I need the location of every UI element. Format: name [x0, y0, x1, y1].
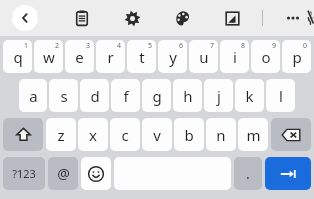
staticText: z: [57, 125, 65, 145]
staticText: i: [233, 47, 237, 67]
button[interactable]: d: [80, 79, 109, 112]
button[interactable]: Shift: [3, 118, 43, 151]
staticText: q: [13, 47, 23, 67]
button[interactable]: h: [173, 79, 202, 112]
button[interactable]: r: [96, 40, 125, 73]
staticText: o: [261, 47, 271, 67]
button[interactable]: y: [158, 40, 187, 73]
staticText: t: [139, 47, 145, 67]
staticText: d: [90, 86, 100, 106]
staticText: s: [60, 86, 68, 106]
staticText: 7: [210, 41, 215, 51]
staticText: m: [246, 125, 261, 145]
button[interactable]: l: [266, 79, 295, 112]
button[interactable]: .: [234, 157, 262, 190]
staticText: a: [29, 86, 38, 106]
staticText: j: [217, 86, 221, 106]
button[interactable]: c: [110, 118, 140, 151]
button[interactable]: Settings: [118, 4, 146, 32]
button[interactable]: More options: [279, 4, 307, 32]
button[interactable]: f: [111, 79, 140, 112]
button[interactable]: i: [220, 40, 249, 73]
button[interactable]: v: [142, 118, 172, 151]
button[interactable]: Backspace: [271, 118, 311, 151]
staticText: h: [183, 86, 193, 106]
staticText: c: [121, 125, 129, 145]
staticText: u: [199, 47, 209, 67]
button[interactable]: Voice input disabled: [307, 4, 314, 32]
staticText: 2: [55, 41, 60, 51]
staticText: .: [246, 164, 250, 183]
staticText: n: [216, 125, 226, 145]
button[interactable]: u: [189, 40, 218, 73]
staticText: k: [245, 86, 254, 106]
staticText: 1: [24, 41, 29, 51]
staticText: 9: [272, 41, 277, 51]
staticText: 8: [241, 41, 246, 51]
button[interactable]: a: [19, 79, 47, 112]
button[interactable]: m: [238, 118, 268, 151]
button[interactable]: x: [78, 118, 108, 151]
staticText: b: [184, 125, 194, 145]
staticText: 6: [179, 41, 184, 51]
button[interactable]: Clipboard: [68, 4, 96, 32]
staticText: e: [75, 47, 84, 67]
button[interactable]: Next: [265, 157, 311, 190]
button[interactable]: j: [204, 79, 233, 112]
button[interactable]: Emoji: [81, 157, 111, 190]
button[interactable]: g: [142, 79, 171, 112]
staticText: x: [89, 125, 97, 145]
staticText: l: [279, 86, 283, 106]
staticText: r: [107, 47, 114, 67]
button[interactable]: n: [206, 118, 236, 151]
button[interactable]: Resize keyboard: [218, 4, 246, 32]
staticText: @: [57, 164, 70, 183]
button[interactable]: ?123: [3, 157, 45, 190]
staticText: v: [153, 125, 161, 145]
button[interactable]: o: [251, 40, 280, 73]
staticText: 4: [117, 41, 122, 51]
staticText: w: [43, 47, 55, 67]
button[interactable]: Back: [12, 5, 38, 31]
button[interactable]: Theme: [168, 4, 196, 32]
button[interactable]: t: [127, 40, 156, 73]
staticText: f: [123, 86, 129, 106]
staticText: ?123: [12, 166, 36, 181]
staticText: 5: [148, 41, 153, 51]
button[interactable]: s: [49, 79, 78, 112]
button[interactable]: k: [235, 79, 264, 112]
staticText: 0: [303, 41, 308, 51]
staticText: g: [152, 86, 162, 106]
button[interactable]: p: [282, 40, 311, 73]
button[interactable]: q: [3, 40, 32, 73]
button[interactable]: b: [174, 118, 204, 151]
staticText: p: [292, 47, 302, 67]
button[interactable]: @: [48, 157, 78, 190]
staticText: y: [169, 47, 177, 67]
button[interactable]: z: [46, 118, 76, 151]
button[interactable]: e: [65, 40, 94, 73]
button[interactable]: w: [34, 40, 63, 73]
staticText: 3: [86, 41, 91, 51]
